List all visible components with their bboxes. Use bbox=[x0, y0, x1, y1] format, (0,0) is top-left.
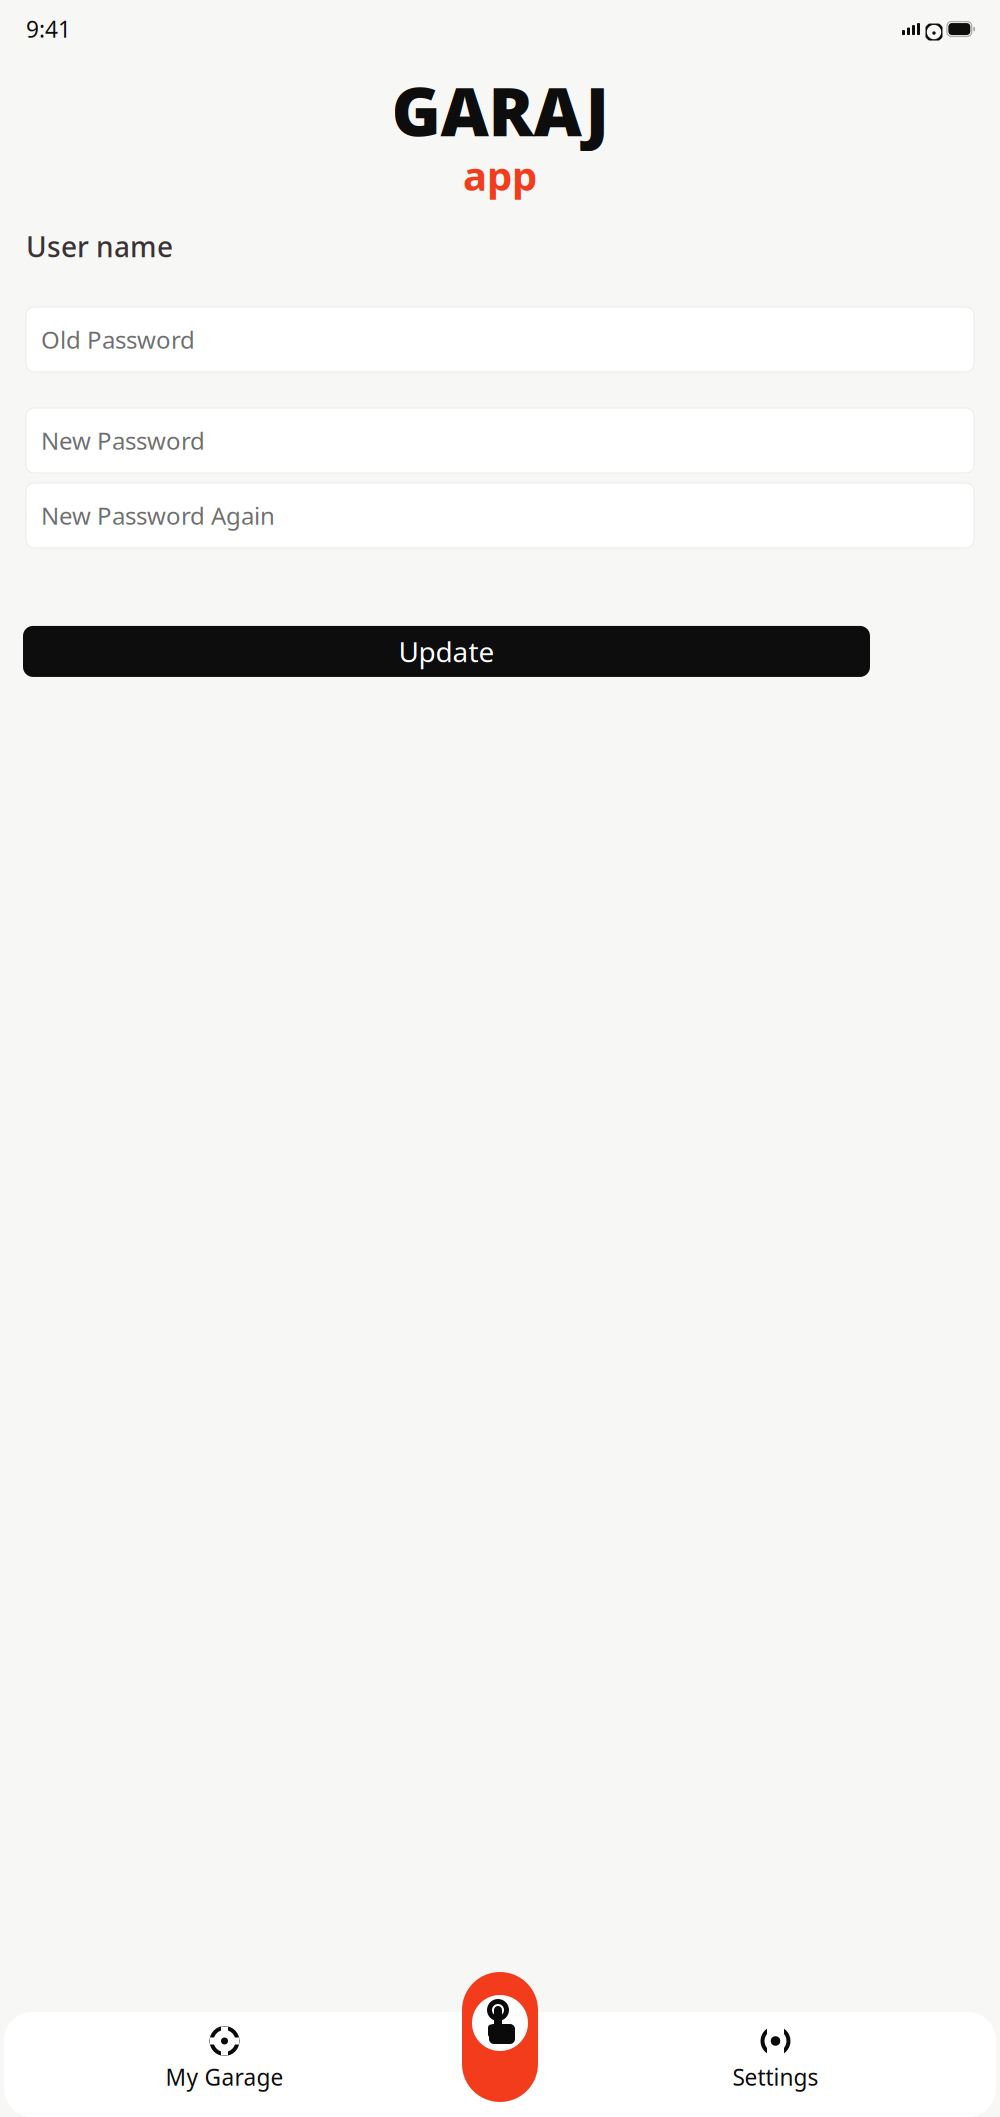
button[interactable]: Update bbox=[23, 626, 870, 677]
button[interactable]: Scan bbox=[455, 1972, 545, 2104]
staticText: Old Password bbox=[41, 323, 195, 355]
button[interactable]: Old Password bbox=[26, 307, 974, 372]
button[interactable]: New Password bbox=[26, 408, 974, 473]
staticText: My Garage bbox=[165, 2062, 283, 2092]
staticText: New Password Again bbox=[41, 499, 275, 531]
staticText: User name bbox=[26, 228, 173, 265]
button[interactable]: New Password Again bbox=[26, 483, 974, 548]
staticText: GARAJ bbox=[391, 66, 608, 155]
staticText: New Password bbox=[41, 424, 205, 456]
button[interactable]: Settings bbox=[555, 2012, 996, 2102]
staticText: 9:41 bbox=[26, 14, 71, 44]
staticText: app bbox=[463, 149, 537, 202]
button[interactable]: My Garage bbox=[4, 2012, 445, 2102]
staticText: Update bbox=[398, 633, 494, 670]
staticText: Settings bbox=[732, 2062, 818, 2092]
